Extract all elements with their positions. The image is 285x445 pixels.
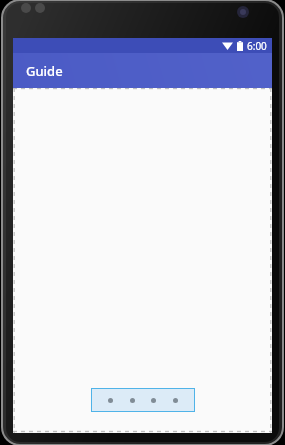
other: Page 1: [108, 398, 113, 403]
other: Page 4: [173, 398, 178, 403]
other: Page 2: [130, 398, 135, 403]
staticText: 6:00: [247, 39, 267, 53]
staticText: Guide: [26, 62, 63, 80]
button[interactable]: Page 1: [91, 388, 195, 412]
other: Page 3: [151, 398, 156, 403]
